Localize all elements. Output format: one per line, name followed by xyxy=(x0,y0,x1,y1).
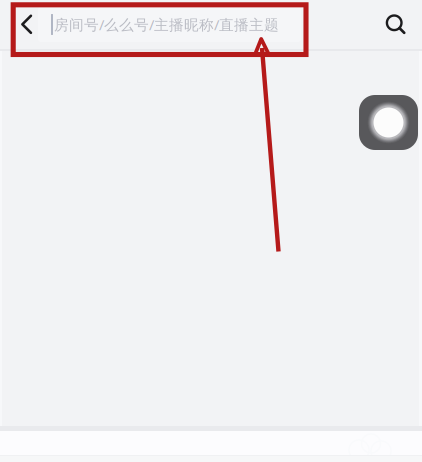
button[interactable]: Start broadcast xyxy=(359,51,422,150)
button[interactable]: Search xyxy=(375,0,416,49)
button[interactable]: Back xyxy=(0,0,38,49)
staticText: 房间号/么么号/主播昵称/直播主题 xyxy=(54,15,279,34)
button[interactable]: 房间号/么么号/主播昵称/直播主题 xyxy=(38,7,301,42)
